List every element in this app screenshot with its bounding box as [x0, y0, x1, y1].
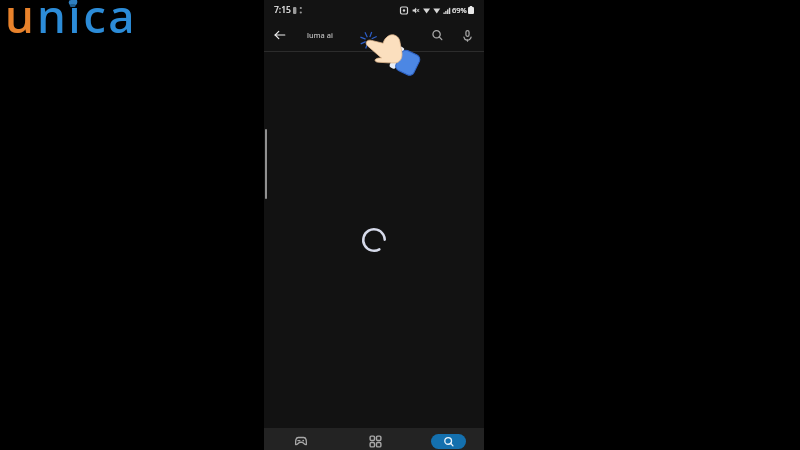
button[interactable]: Search — [423, 21, 451, 49]
staticText: nica — [37, 0, 138, 47]
button[interactable]: Apps — [338, 428, 411, 450]
button[interactable]: Search — [431, 434, 466, 449]
staticText: 69% — [452, 5, 467, 15]
button[interactable]: Voice search — [453, 21, 481, 49]
button[interactable]: Games — [264, 428, 338, 450]
button[interactable]: Back — [264, 20, 296, 50]
staticText: 7:15 — [274, 4, 291, 16]
button[interactable]: luma ai — [307, 30, 333, 40]
staticText: u — [5, 0, 37, 47]
